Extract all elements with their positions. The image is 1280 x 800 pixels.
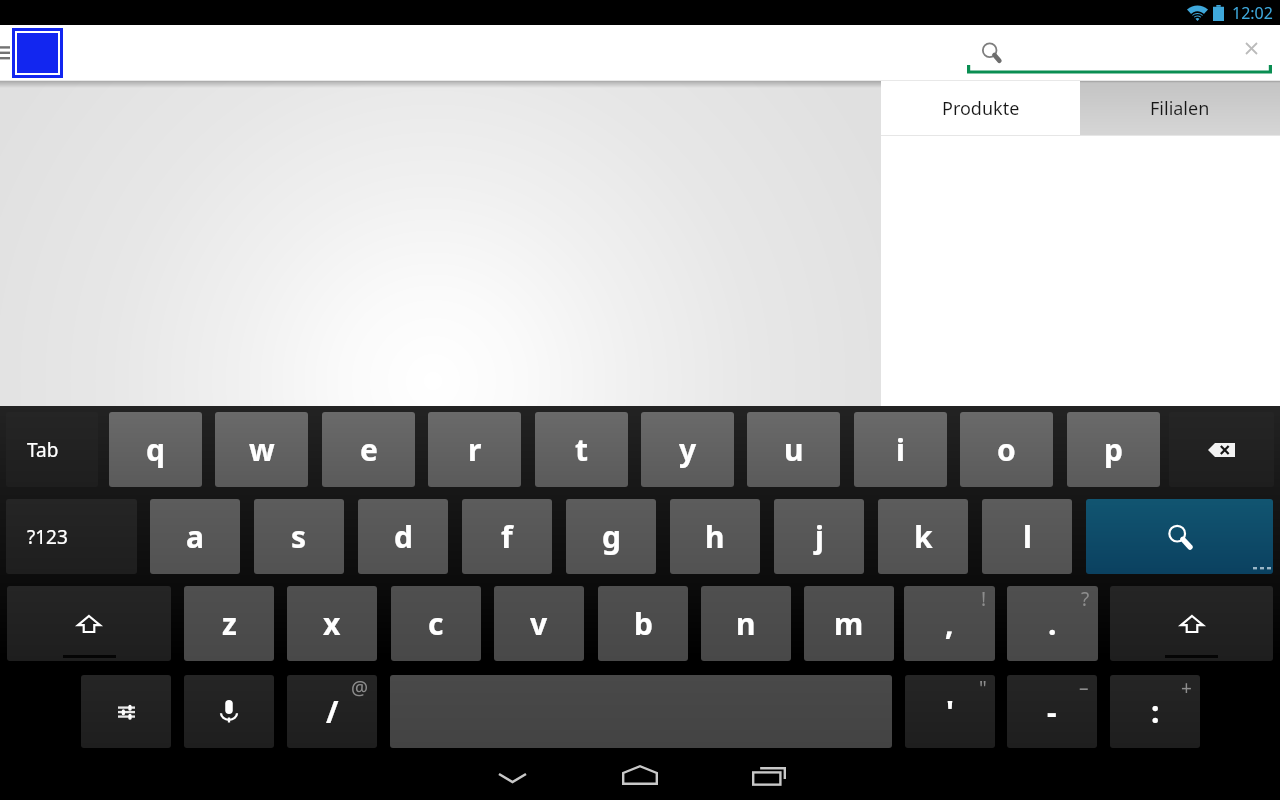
button[interactable]: l (982, 499, 1072, 574)
button[interactable]: Backspace (1169, 412, 1274, 487)
button[interactable]: Home (576, 754, 704, 800)
staticText: s (291, 516, 307, 557)
button[interactable]: f (462, 499, 552, 574)
button[interactable]: Menu (0, 44, 10, 60)
staticText: Produkte (942, 96, 1020, 121)
staticText: ' (946, 691, 954, 732)
button[interactable]: p (1067, 412, 1160, 487)
button[interactable]: t (535, 412, 628, 487)
staticText: u (784, 429, 804, 470)
button[interactable]: Voice input (184, 675, 274, 748)
button[interactable]: Search (1086, 499, 1273, 574)
button[interactable]: o (960, 412, 1053, 487)
staticText: d (394, 516, 413, 557)
staticText: Filialen (1150, 96, 1210, 121)
button[interactable]: u (747, 412, 840, 487)
button[interactable]: , (904, 586, 995, 661)
button[interactable]: : (1110, 675, 1200, 748)
button[interactable]: Keyboard settings (81, 675, 171, 748)
button[interactable]: b (598, 586, 688, 661)
staticText: – (1079, 675, 1089, 701)
button[interactable]: Tab (6, 412, 98, 487)
button[interactable]: y (641, 412, 734, 487)
button[interactable]: e (322, 412, 415, 487)
button[interactable]: s (254, 499, 344, 574)
button[interactable]: ?123 (6, 499, 137, 574)
button[interactable]: a (150, 499, 240, 574)
staticText: m (834, 603, 864, 644)
staticText: v (530, 603, 548, 644)
staticText: i (896, 429, 905, 470)
staticText: " (979, 675, 987, 701)
staticText: t (575, 429, 589, 470)
button[interactable]: c (391, 586, 481, 661)
button[interactable]: Hide keyboard (448, 754, 576, 800)
button[interactable]: g (566, 499, 656, 574)
staticText: 12:02 (1232, 2, 1273, 24)
staticText: + (1181, 675, 1192, 701)
button[interactable]: Clear search (1246, 43, 1257, 54)
button[interactable]: Produkte (881, 81, 1080, 135)
staticText: / (326, 691, 339, 732)
button[interactable]: j (774, 499, 864, 574)
staticText: h (705, 516, 725, 557)
staticText: : (1151, 691, 1160, 732)
button[interactable]: Shift (1110, 586, 1273, 661)
staticText: y (679, 429, 697, 470)
staticText: x (323, 603, 341, 644)
staticText: f (501, 516, 513, 557)
button[interactable]: n (701, 586, 791, 661)
button[interactable]: z (184, 586, 274, 661)
button[interactable]: q (109, 412, 202, 487)
staticText: a (186, 516, 204, 557)
button[interactable]: k (878, 499, 968, 574)
staticText: Tab (27, 437, 59, 463)
button[interactable]: - (1007, 675, 1097, 748)
staticText: l (1023, 516, 1032, 557)
button[interactable]: w (215, 412, 308, 487)
staticText: j (815, 516, 824, 557)
staticText: g (602, 516, 621, 557)
button[interactable]: m (804, 586, 894, 661)
staticText: ! (981, 586, 987, 612)
button[interactable]: Filialen (1080, 81, 1280, 135)
staticText: b (634, 603, 653, 644)
staticText: , (945, 603, 954, 644)
button[interactable]: i (854, 412, 947, 487)
button[interactable]: v (494, 586, 584, 661)
button[interactable]: r (428, 412, 521, 487)
staticText: @ (351, 675, 369, 701)
button[interactable]: d (358, 499, 448, 574)
staticText: ? (1081, 586, 1090, 612)
staticText: k (914, 516, 933, 557)
staticText: n (736, 603, 756, 644)
staticText: p (1104, 429, 1123, 470)
staticText: c (428, 603, 444, 644)
staticText: ?123 (27, 524, 68, 550)
staticText: o (997, 429, 1016, 470)
button[interactable]: / (287, 675, 377, 748)
button[interactable]: Shift (7, 586, 171, 661)
button[interactable]: h (670, 499, 760, 574)
button[interactable]: x (287, 586, 377, 661)
staticText: r (468, 429, 482, 470)
staticText: . (1048, 603, 1057, 644)
button[interactable]: Recent apps (704, 754, 832, 800)
button[interactable]: . (1007, 586, 1098, 661)
staticText: - (1047, 691, 1057, 732)
staticText: w (249, 429, 275, 470)
staticText: e (360, 429, 378, 470)
button[interactable]: ' (905, 675, 995, 748)
staticText: z (222, 603, 237, 644)
staticText: q (146, 429, 165, 470)
